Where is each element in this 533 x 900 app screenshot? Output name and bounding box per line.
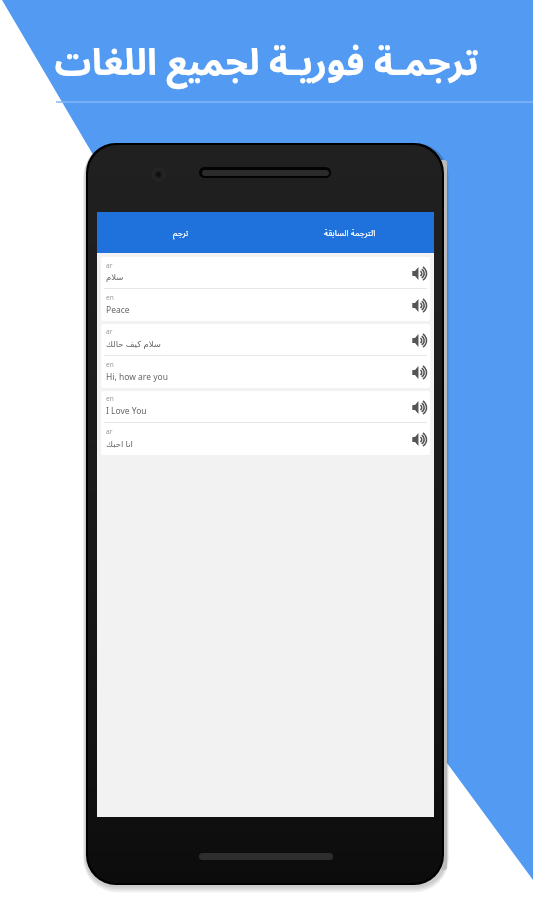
button[interactable]: ترجم [97,212,265,253]
button[interactable]: Play pronunciation [410,363,428,381]
button[interactable]: ar [101,257,430,288]
button[interactable]: Play pronunciation [410,398,428,416]
button[interactable]: ar [101,423,430,455]
staticText: en [106,293,114,302]
staticText: الترجمة السابقة [324,224,376,242]
button[interactable]: Play pronunciation [410,331,428,349]
button[interactable]: Play pronunciation [410,264,428,282]
button[interactable]: en [101,289,430,321]
staticText: Hi, how are you [106,371,168,383]
button[interactable]: en [101,356,430,388]
button[interactable]: Play pronunciation [410,296,428,314]
staticText: ترجم [173,224,189,242]
staticText: ar [106,427,113,436]
button[interactable]: en [101,391,430,422]
staticText: I Love You [106,405,147,417]
staticText: ar [106,327,113,336]
staticText: ترجمـة فوريـة لجميع اللغات [54,25,479,102]
staticText: ar [106,261,113,270]
staticText: انا احبك [106,438,133,450]
staticText: en [106,394,114,403]
button[interactable]: Play pronunciation [410,430,428,448]
button[interactable]: الترجمة السابقة [265,212,434,253]
staticText: سلام [106,272,124,282]
staticText: en [106,360,114,369]
button[interactable]: ar [101,324,430,355]
staticText: سلام كيف حالك [106,338,161,350]
staticText: Peace [106,304,130,316]
